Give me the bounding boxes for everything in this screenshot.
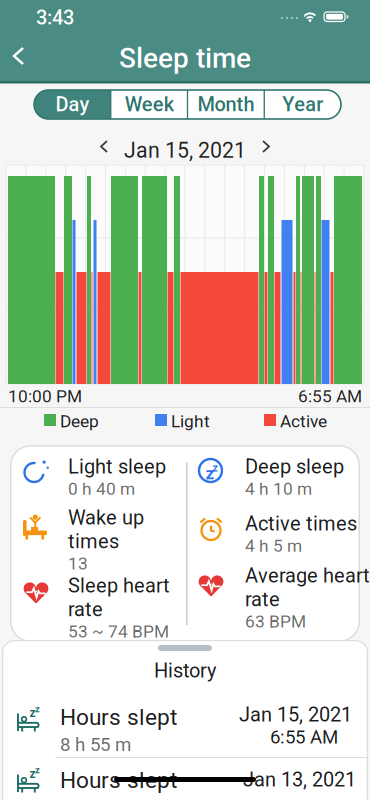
- staticText: 0 h 40 m: [68, 480, 135, 498]
- button[interactable]: Week: [111, 90, 188, 119]
- staticText: Jan 15, 2021: [239, 704, 352, 726]
- staticText: 4 h 10 m: [245, 480, 312, 498]
- staticText: z: [35, 704, 40, 714]
- staticText: z: [212, 462, 217, 473]
- staticText: rate: [68, 599, 103, 620]
- button[interactable]: z: [4, 761, 364, 800]
- staticText: Sleep heart: [68, 575, 170, 597]
- staticText: Year: [282, 94, 323, 115]
- staticText: z: [29, 706, 35, 719]
- staticText: Hours slept: [60, 705, 177, 729]
- staticText: 53 ~ 74 BPM: [68, 622, 169, 641]
- staticText: Hours slept: [60, 768, 177, 792]
- staticText: Day: [55, 94, 89, 115]
- button[interactable]: z: [4, 694, 364, 750]
- staticText: 4 h 5 m: [245, 537, 302, 555]
- staticText: Sleep time: [119, 43, 251, 73]
- staticText: 6:55 AM: [270, 727, 338, 747]
- staticText: Average heart: [245, 565, 370, 587]
- staticText: Month: [197, 94, 254, 115]
- staticText: z: [205, 464, 214, 483]
- staticText: z: [29, 767, 35, 780]
- staticText: 6:55 AM: [298, 387, 362, 406]
- staticText: times: [68, 531, 119, 552]
- staticText: 13: [68, 554, 88, 573]
- button[interactable]: Next day: [260, 139, 272, 154]
- staticText: 8 h 55 m: [60, 734, 131, 754]
- staticText: 63 BPM: [245, 612, 306, 631]
- staticText: z: [35, 765, 40, 775]
- staticText: History: [154, 660, 216, 682]
- staticText: Deep: [60, 412, 99, 431]
- staticText: Light sleep: [68, 456, 166, 478]
- button[interactable]: Previous day: [98, 139, 110, 154]
- staticText: Light: [171, 412, 210, 431]
- staticText: Jan 13, 2021: [243, 769, 356, 791]
- button[interactable]: Day: [34, 90, 111, 119]
- staticText: 10:00 PM: [8, 387, 82, 406]
- button[interactable]: Month: [187, 90, 264, 119]
- staticText: Deep sleep: [245, 456, 344, 478]
- staticText: Wake up: [68, 507, 144, 529]
- staticText: Jan 15, 2021: [124, 139, 246, 162]
- staticText: Active times: [245, 513, 357, 535]
- staticText: 3:43: [36, 7, 74, 29]
- button[interactable]: Year: [264, 90, 341, 119]
- button[interactable]: Back: [8, 44, 32, 68]
- staticText: rate: [245, 589, 280, 610]
- staticText: Active: [280, 412, 327, 431]
- staticText: Week: [125, 94, 174, 115]
